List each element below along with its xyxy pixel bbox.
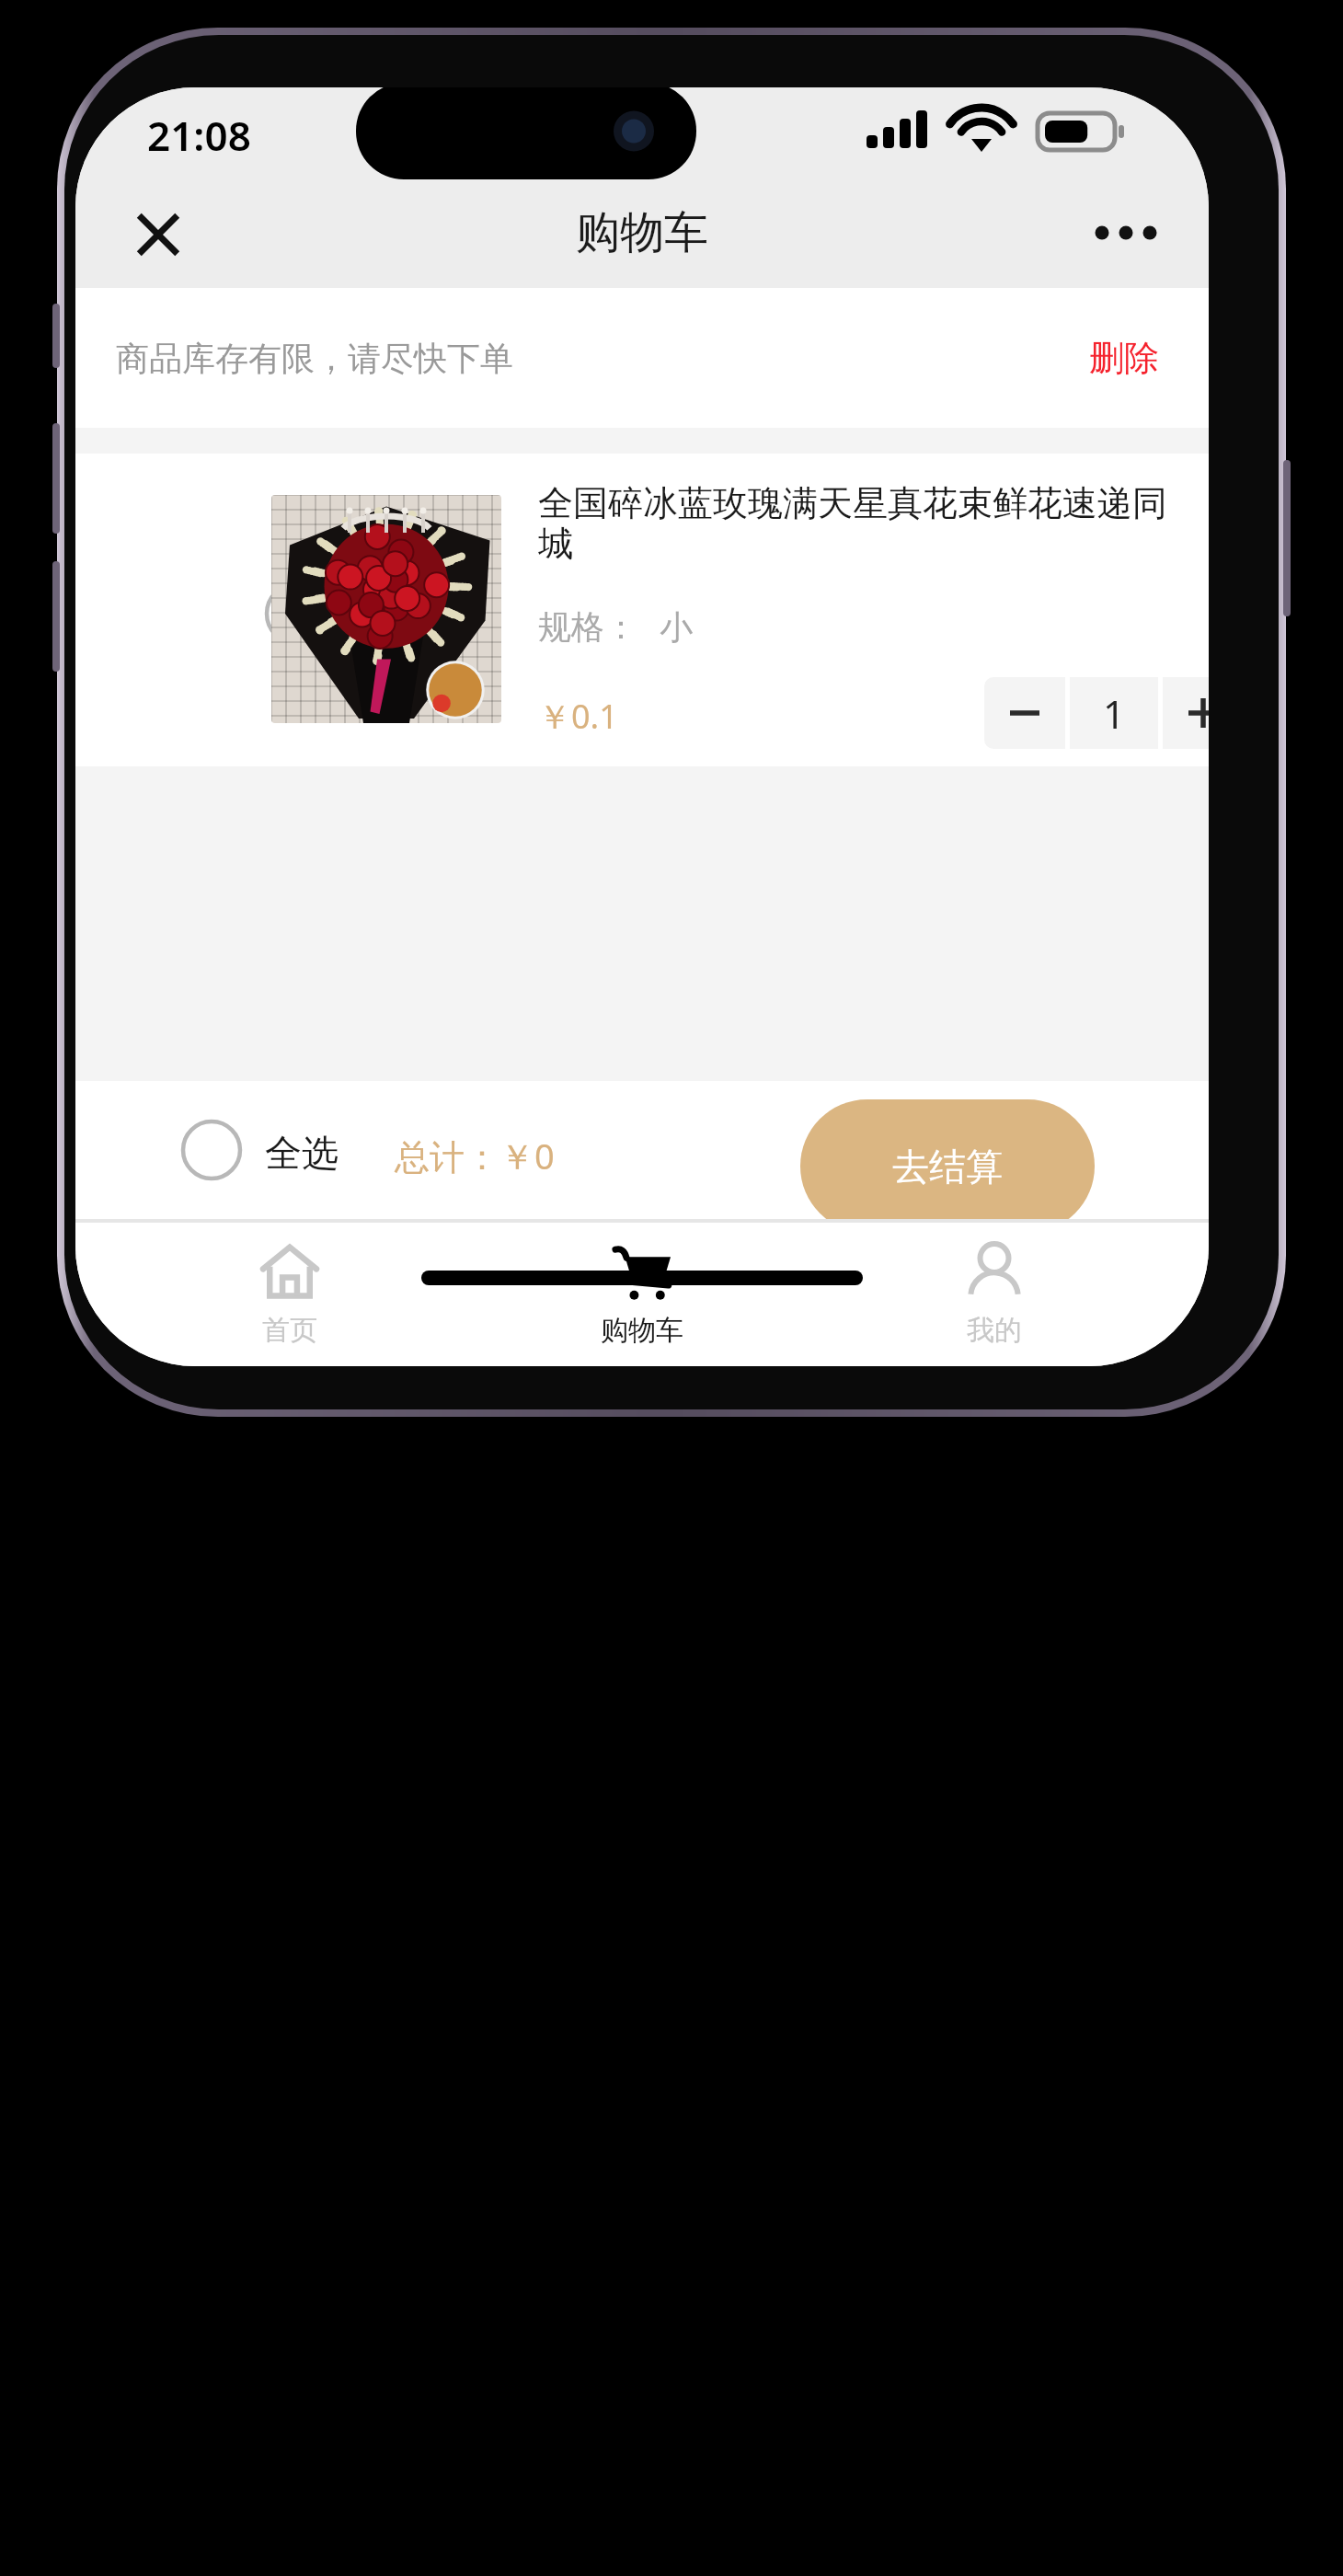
button[interactable]: Close [118, 194, 199, 275]
button[interactable]: 我的 [856, 1223, 1132, 1366]
staticText: 购物车 [601, 1313, 683, 1348]
button[interactable]: 购物车 [504, 1223, 780, 1366]
button[interactable]: 首页 [152, 1223, 428, 1366]
staticText: 去结算 [892, 1144, 1003, 1190]
staticText: 我的 [967, 1313, 1022, 1348]
staticText: 删除 [1089, 336, 1159, 380]
staticText: 规格： [538, 606, 637, 648]
staticText: 1 [1103, 687, 1126, 740]
button[interactable]: 删除 [1080, 321, 1168, 395]
button[interactable]: Decrease quantity [984, 677, 1065, 749]
button[interactable]: More options [1080, 187, 1172, 279]
staticText: ￥0.1 [538, 694, 618, 739]
button[interactable]: Select item [237, 555, 355, 673]
staticText: 全国碎冰蓝玫瑰满天星真花束鲜花速递同城 [538, 481, 1182, 566]
staticText: 21:08 [147, 108, 251, 163]
staticText: 商品库存有限，请尽快下单 [116, 338, 513, 379]
staticText: 首页 [262, 1313, 317, 1348]
staticText: 小 [660, 606, 693, 648]
button[interactable]: Select all [160, 1098, 263, 1202]
button[interactable]: Increase quantity [1163, 677, 1209, 749]
staticText: 总计：￥0 [395, 1132, 555, 1179]
button[interactable]: 去结算 [800, 1099, 1095, 1233]
staticText: 全选 [265, 1130, 339, 1176]
staticText: 购物车 [576, 205, 708, 260]
